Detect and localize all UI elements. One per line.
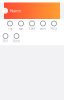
- staticText: Bill: [3, 39, 8, 43]
- staticText: Pay: [8, 27, 12, 30]
- button[interactable]: Scan: [15, 21, 26, 30]
- staticText: Fund: [13, 39, 20, 43]
- button[interactable]: Card: [26, 21, 37, 30]
- button[interactable]: Fund: [11, 33, 22, 43]
- staticText: More: [39, 27, 46, 30]
- staticText: Card: [29, 27, 35, 30]
- button[interactable]: Bill: [0, 33, 11, 43]
- staticText: Help: [50, 27, 57, 30]
- button[interactable]: Help: [48, 21, 59, 30]
- staticText: Name: [10, 8, 21, 13]
- button[interactable]: Pay: [4, 21, 15, 30]
- button[interactable]: More: [37, 21, 48, 30]
- staticText: Scan: [18, 27, 23, 30]
